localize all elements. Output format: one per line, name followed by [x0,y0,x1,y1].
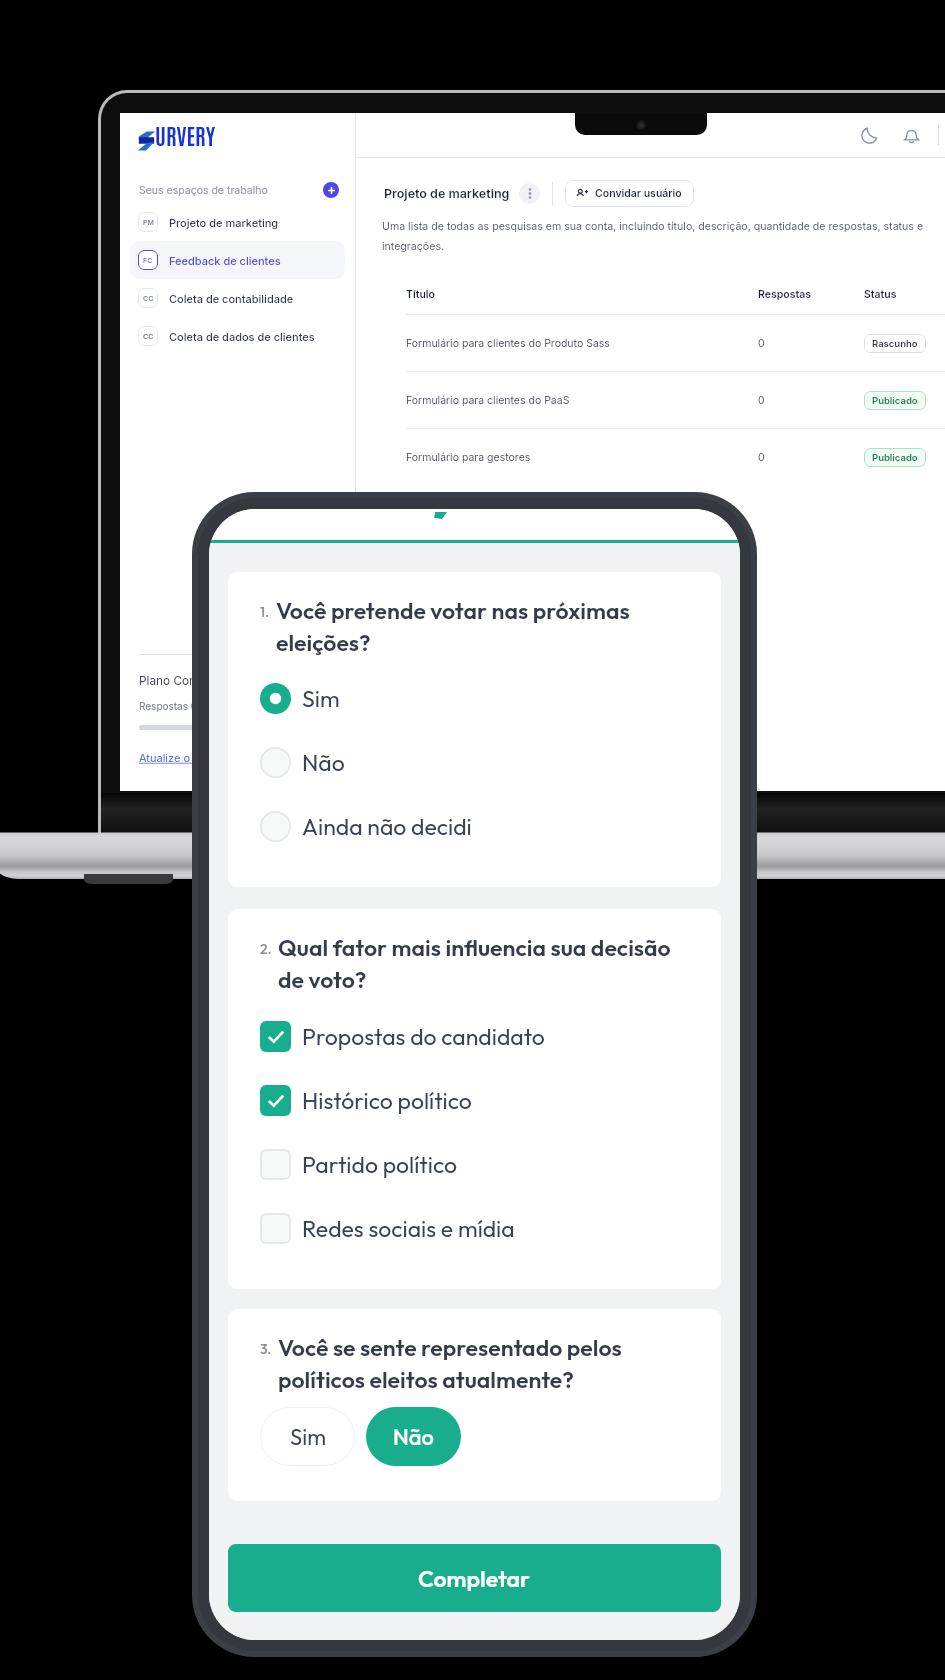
button[interactable]: Sim [260,683,340,714]
staticText: Propostas do candidato [302,1022,545,1051]
staticText: 1. [260,603,270,621]
staticText: CC [143,332,154,340]
button[interactable]: Propostas do candidato [260,1021,545,1052]
staticText: Uma lista de todas as pesquisas em sua c… [382,220,943,253]
staticText: Publicado [872,395,918,406]
staticText: Você se sente representado pelos polític… [278,1333,701,1394]
button[interactable]: Mais opções [519,183,540,204]
staticText: 0 [758,337,864,350]
staticText: 3. [260,1340,272,1358]
button[interactable]: Adicionar espaço de trabalho [323,182,339,198]
staticText: Publicado [872,452,918,463]
button[interactable]: Formulário para clientes do PaaS [406,372,945,428]
staticText: Sim [302,684,340,713]
staticText: Coleta de contabilidade [169,292,294,305]
staticText: Coleta de dados de clientes [169,330,315,343]
staticText: Você pretende votar nas próximas eleiçõe… [276,596,701,657]
button[interactable]: Modo escuro [855,121,883,149]
staticText: Ainda não decidi [302,812,472,841]
staticText: Redes sociais e mídia [302,1214,515,1243]
button[interactable]: Não [366,1407,461,1466]
staticText: Seus espaços de trabalho [139,184,268,197]
button[interactable]: Histórico político [260,1085,472,1116]
staticText: Projeto de marketing [384,186,510,201]
staticText: 0 [758,451,864,464]
button[interactable]: FC [130,241,345,279]
button[interactable]: Notificações [897,121,925,149]
staticText: Qual fator mais influencia sua decisão d… [278,933,701,994]
staticText: PM [143,218,154,226]
staticText: Rascunho [872,338,918,349]
staticText: URVERY [155,121,216,149]
button[interactable]: Não [260,747,345,778]
button[interactable]: Formulário para clientes do Produto Sass [406,315,945,371]
staticText: Respostas 0/100 [139,700,218,712]
staticText: Convidar usuário [595,187,682,200]
staticText: Sim [290,1423,326,1451]
staticText: Histórico político [302,1086,472,1115]
staticText: Plano Comunidade [139,674,245,688]
staticText: Não [393,1423,434,1451]
staticText: 2. [260,940,272,958]
staticText: Formulário para clientes do PaaS [406,394,758,407]
button[interactable]: Atualize o plano [139,751,222,764]
button[interactable]: Formulário para gestores [406,429,945,485]
staticText: CC [143,294,154,302]
staticText: FC [143,256,153,264]
staticText: Status [864,288,897,301]
button[interactable]: Partido político [260,1149,457,1180]
staticText: Formulário para clientes do Produto Sass [406,337,758,350]
staticText: Projeto de marketing [169,216,279,229]
button[interactable]: Convidar usuário [565,180,694,207]
button[interactable]: CC [130,317,345,355]
button[interactable]: Sim [260,1407,355,1466]
staticText: Feedback de clientes [169,254,281,267]
button[interactable]: Ainda não decidi [260,811,472,842]
staticText: Respostas [758,288,864,301]
staticText: Partido político [302,1150,457,1179]
staticText: Não [302,748,345,777]
staticText: 0 [758,394,864,407]
button[interactable]: CC [130,279,345,317]
button[interactable]: Redes sociais e mídia [260,1213,515,1244]
staticText: Formulário para gestores [406,451,758,464]
button[interactable]: PM [130,203,345,241]
staticText: Completar [418,1564,531,1593]
button[interactable]: Completar [228,1544,721,1612]
staticText: Título [406,288,758,301]
